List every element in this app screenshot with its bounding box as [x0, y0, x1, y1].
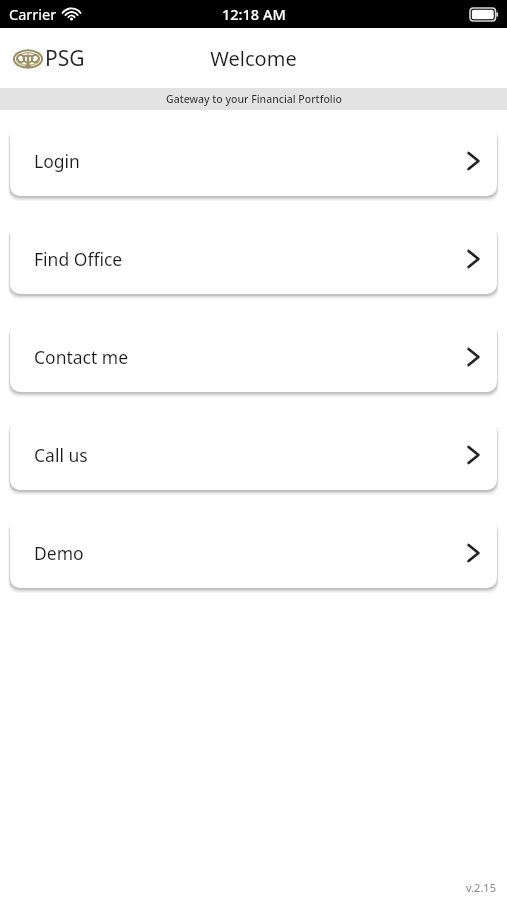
staticText: Carrier [9, 4, 57, 24]
staticText: Contact me [34, 345, 129, 369]
staticText: Welcome [210, 45, 297, 72]
staticText: 12:18 AM [222, 4, 286, 24]
staticText: Login [34, 149, 80, 173]
button[interactable]: Find Office [10, 224, 497, 294]
staticText: v.2.15 [466, 880, 496, 895]
staticText: Call us [34, 443, 88, 467]
button[interactable]: Login [10, 126, 497, 196]
button[interactable]: Contact me [10, 322, 497, 392]
button[interactable]: Call us [10, 420, 497, 490]
button[interactable]: Demo [10, 518, 497, 588]
staticText: Gateway to your Financial Portfolio [166, 92, 342, 106]
staticText: Find Office [34, 247, 123, 271]
staticText: PSG [45, 44, 85, 73]
staticText: Demo [34, 541, 84, 565]
